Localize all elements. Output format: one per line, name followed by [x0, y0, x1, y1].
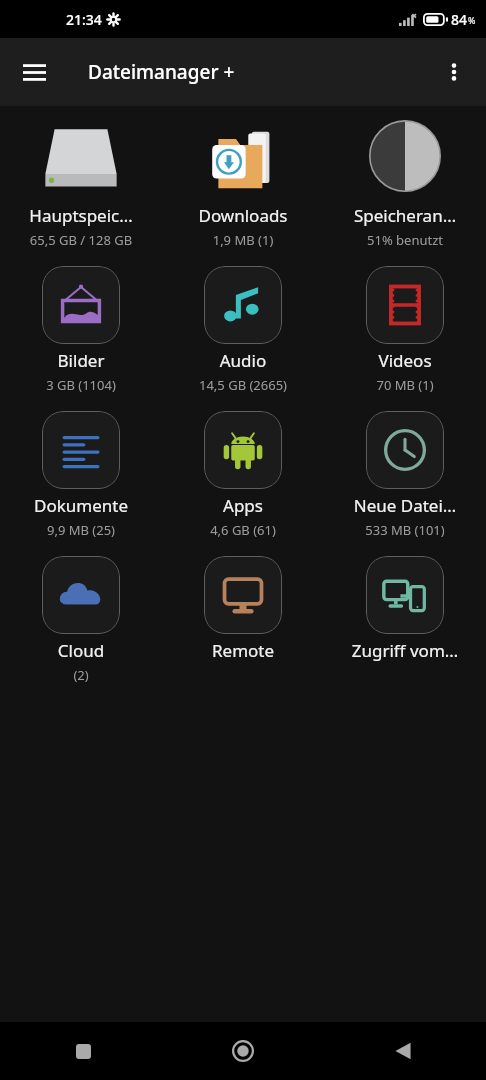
staticText: Remote [164, 639, 322, 662]
button[interactable]: Downloads [162, 116, 324, 249]
staticText: 21:34 [66, 10, 102, 29]
staticText: Dateimanager + [88, 59, 235, 85]
button[interactable]: Menu [10, 48, 58, 96]
button[interactable]: Dokumente [0, 406, 162, 539]
staticText: 14,5 GB (2665) [164, 376, 322, 394]
button[interactable]: More options [430, 48, 478, 96]
button[interactable]: Bilder [0, 261, 162, 394]
button[interactable]: Zugriff vom… [324, 551, 486, 684]
staticText: Zugriff vom… [326, 639, 484, 662]
button[interactable]: Neue Datei… [324, 406, 486, 539]
button[interactable]: Cloud [0, 551, 162, 684]
button[interactable]: Videos [324, 261, 486, 394]
button[interactable]: Apps [162, 406, 324, 539]
staticText: Neue Datei… [326, 494, 484, 517]
staticText: 9,9 MB (25) [2, 521, 160, 539]
staticText: 4,6 GB (61) [164, 521, 322, 539]
button[interactable]: Speicheran… [324, 116, 486, 249]
staticText: Hauptspeic… [2, 204, 160, 227]
staticText: 70 MB (1) [326, 376, 484, 394]
staticText: Bilder [2, 349, 160, 372]
button[interactable]: Remote [162, 551, 324, 684]
staticText: 533 MB (101) [326, 521, 484, 539]
staticText: 84 [451, 10, 468, 29]
staticText: Videos [326, 349, 484, 372]
button[interactable]: Home [220, 1028, 266, 1074]
staticText: 65,5 GB / 128 GB [2, 231, 160, 249]
staticText: Apps [164, 494, 322, 517]
staticText: 3 GB (1104) [2, 376, 160, 394]
staticText: % [468, 14, 476, 26]
staticText: 1,9 MB (1) [164, 231, 322, 249]
staticText: Dokumente [2, 494, 160, 517]
staticText: Audio [164, 349, 322, 372]
button[interactable]: Back [380, 1028, 426, 1074]
button[interactable]: Recents [60, 1028, 106, 1074]
staticText: Speicheran… [326, 204, 484, 227]
staticText: (2) [2, 666, 160, 684]
staticText: Downloads [164, 204, 322, 227]
staticText: 51% benutzt [326, 231, 484, 249]
button[interactable]: Audio [162, 261, 324, 394]
staticText: Cloud [2, 639, 160, 662]
button[interactable]: Hauptspeic… [0, 116, 162, 249]
